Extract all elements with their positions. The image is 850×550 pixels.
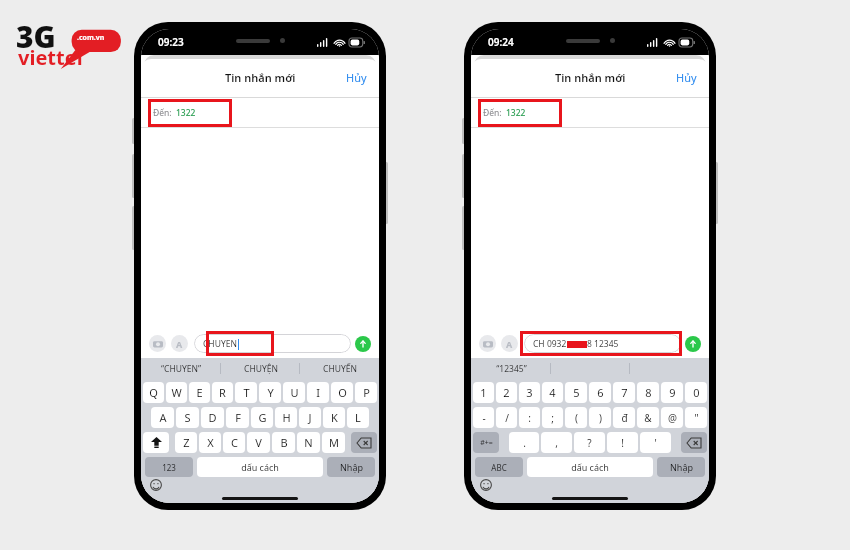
button[interactable]: R xyxy=(212,382,233,403)
button[interactable]: A xyxy=(151,407,174,428)
button[interactable]: T xyxy=(235,382,257,403)
button[interactable]: 7 xyxy=(613,382,635,403)
button[interactable]: Hủy xyxy=(670,66,703,89)
staticText: I xyxy=(316,385,320,400)
button[interactable]: 4 xyxy=(542,382,563,403)
staticText: “12345” xyxy=(496,363,527,375)
button[interactable]: Q xyxy=(143,382,164,403)
button[interactable]: 6 xyxy=(589,382,611,403)
button[interactable]: . xyxy=(509,432,539,453)
button[interactable]: 2 xyxy=(496,382,517,403)
button[interactable]: 123 xyxy=(145,457,193,477)
staticText: CHUYẾN xyxy=(323,363,357,375)
button[interactable]: : xyxy=(519,407,540,428)
button[interactable]: B xyxy=(272,432,295,453)
button[interactable]: CHUYEN xyxy=(194,334,351,353)
button[interactable]: V xyxy=(247,432,270,453)
staticText: F xyxy=(235,410,241,425)
button[interactable]: S xyxy=(176,407,199,428)
staticText: Nhập xyxy=(670,461,693,473)
button[interactable]: Z xyxy=(175,432,197,453)
button[interactable]: ( xyxy=(565,407,587,428)
button[interactable]: O xyxy=(331,382,353,403)
staticText: đ xyxy=(621,411,628,425)
staticText: L xyxy=(355,410,361,425)
button[interactable]: 5 xyxy=(565,382,587,403)
button[interactable]: Nhập xyxy=(657,457,705,477)
button[interactable]: Send xyxy=(355,336,371,352)
button[interactable]: dấu cách xyxy=(197,457,323,477)
button[interactable]: H xyxy=(275,407,297,428)
button[interactable]: ) xyxy=(589,407,611,428)
button[interactable]: App Store xyxy=(171,335,188,352)
button[interactable]: CHUYỆN xyxy=(221,358,300,379)
button[interactable]: 8 xyxy=(637,382,659,403)
button[interactable]: CHUYẾN xyxy=(300,358,379,379)
button[interactable]: Camera xyxy=(479,335,496,352)
staticText: 4 xyxy=(549,385,556,400)
button[interactable]: đ xyxy=(613,407,635,428)
button[interactable]: U xyxy=(283,382,305,403)
button[interactable]: ABC xyxy=(475,457,523,477)
button[interactable]: Send xyxy=(685,336,701,352)
button[interactable]: W xyxy=(166,382,187,403)
staticText: M xyxy=(329,435,339,450)
button[interactable]: ; xyxy=(542,407,563,428)
button[interactable]: Y xyxy=(259,382,281,403)
button[interactable]: " xyxy=(685,407,707,428)
button[interactable]: F xyxy=(226,407,249,428)
button[interactable]: ? xyxy=(574,432,605,453)
staticText: J xyxy=(308,410,312,425)
button[interactable]: C xyxy=(223,432,245,453)
button[interactable]: M xyxy=(322,432,345,453)
button[interactable]: #+= xyxy=(473,432,499,453)
button[interactable]: J xyxy=(299,407,321,428)
staticText: ABC xyxy=(491,462,507,473)
staticText: 1322 xyxy=(506,107,526,119)
button[interactable]: P xyxy=(355,382,377,403)
button[interactable]: K xyxy=(323,407,345,428)
button[interactable]: Emoji xyxy=(480,479,492,491)
button[interactable]: Backspace xyxy=(681,432,707,453)
button[interactable]: - xyxy=(473,407,494,428)
staticText: CH 0932 xyxy=(533,338,567,350)
button[interactable]: dấu cách xyxy=(527,457,653,477)
staticText: A xyxy=(159,410,167,425)
button[interactable]: Nhập xyxy=(327,457,375,477)
staticText: & xyxy=(644,411,652,425)
button[interactable]: Emoji xyxy=(150,479,162,491)
button[interactable]: ! xyxy=(607,432,638,453)
button[interactable]: & xyxy=(637,407,659,428)
button[interactable]: @ xyxy=(661,407,683,428)
button[interactable]: App Store xyxy=(501,335,518,352)
button[interactable]: N xyxy=(297,432,320,453)
button[interactable]: / xyxy=(496,407,517,428)
staticText: H xyxy=(282,410,291,425)
button[interactable]: “12345” xyxy=(471,358,551,379)
button[interactable]: Camera xyxy=(149,335,166,352)
staticText: ? xyxy=(587,436,592,450)
button[interactable]: Hủy xyxy=(340,66,373,89)
button[interactable]: Backspace xyxy=(351,432,377,453)
button[interactable]: 0 xyxy=(685,382,707,403)
button[interactable]: ' xyxy=(640,432,671,453)
button[interactable]: 3 xyxy=(519,382,540,403)
button[interactable]: , xyxy=(541,432,572,453)
button[interactable]: X xyxy=(199,432,221,453)
button[interactable]: D xyxy=(201,407,224,428)
button[interactable]: “CHUYEN” xyxy=(141,358,221,379)
button[interactable]: Shift xyxy=(143,432,169,453)
staticText: 6 xyxy=(597,385,604,400)
staticText: B xyxy=(280,435,288,450)
button[interactable]: E xyxy=(189,382,210,403)
button[interactable]: I xyxy=(307,382,329,403)
staticText: #+= xyxy=(480,438,493,448)
staticText: , xyxy=(555,436,558,450)
button[interactable]: L xyxy=(347,407,369,428)
button[interactable]: G xyxy=(251,407,273,428)
button[interactable]: 9 xyxy=(661,382,683,403)
button[interactable]: 1 xyxy=(473,382,494,403)
button[interactable]: CH 0932 xyxy=(524,334,681,353)
